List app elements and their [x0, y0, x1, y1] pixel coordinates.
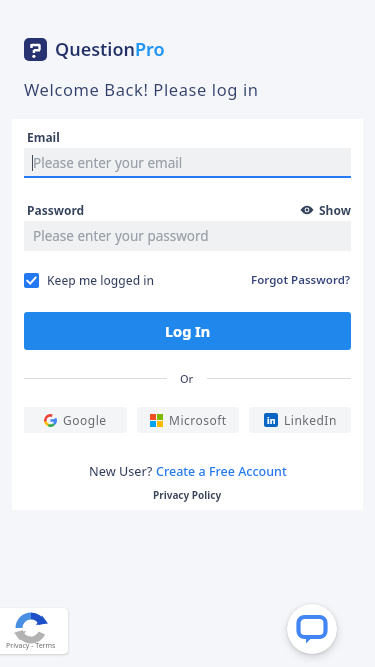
staticText: QuestionPro [55, 37, 165, 62]
staticText: LinkedIn [284, 412, 337, 428]
staticText: Email [27, 129, 60, 145]
button[interactable] [287, 604, 337, 654]
staticText: Password [27, 202, 85, 218]
button[interactable]: in [249, 407, 351, 433]
staticText: New User? [89, 463, 156, 480]
button[interactable]: Google [24, 407, 127, 433]
button[interactable]: Show [300, 202, 351, 218]
button[interactable]: Microsoft [137, 407, 239, 433]
staticText: Show [319, 202, 351, 218]
staticText: Please enter your password [33, 227, 209, 245]
staticText: Please enter your email [33, 154, 183, 172]
staticText: Privacy - Terms [6, 641, 56, 651]
button[interactable]: New User? [89, 463, 287, 480]
button[interactable]: Log In [24, 312, 351, 350]
staticText: Or [180, 371, 194, 386]
staticText: in [267, 414, 276, 426]
button[interactable]: Keep me logged in [24, 272, 154, 288]
staticText: Microsoft [169, 412, 227, 428]
staticText: Welcome Back! Please log in [24, 78, 259, 100]
button[interactable]: Privacy Policy [153, 488, 222, 502]
staticText: Log In [165, 321, 211, 341]
staticText: Keep me logged in [47, 272, 154, 288]
button[interactable]: Forgot Password? [251, 272, 351, 288]
staticText: Create a Free Account [156, 463, 287, 480]
staticText: Google [63, 412, 107, 428]
